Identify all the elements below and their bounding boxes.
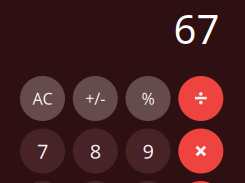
staticText: 67 <box>173 2 219 55</box>
button[interactable]: 8 <box>73 128 118 173</box>
button[interactable]: Multiply <box>178 128 223 173</box>
button[interactable]: 6 <box>126 181 171 183</box>
staticText: AC <box>32 88 52 109</box>
staticText: % <box>142 88 155 109</box>
button[interactable]: Minus <box>178 181 223 183</box>
button[interactable]: 7 <box>20 128 65 173</box>
staticText: 7 <box>37 138 48 164</box>
staticText: 9 <box>143 138 154 164</box>
button[interactable]: 4 <box>20 181 65 183</box>
button[interactable]: Divide <box>178 76 223 121</box>
button[interactable]: 5 <box>73 181 118 183</box>
staticText: 8 <box>90 138 101 164</box>
button[interactable]: AC <box>20 76 65 121</box>
button[interactable]: 9 <box>126 128 171 173</box>
staticText: +/- <box>85 88 105 109</box>
button[interactable]: % <box>126 76 171 121</box>
button[interactable]: +/- <box>73 76 118 121</box>
